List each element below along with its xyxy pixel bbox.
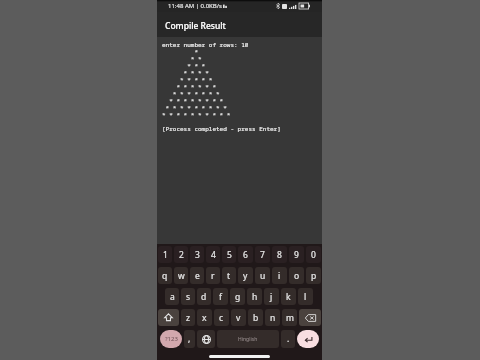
button[interactable]: n <box>265 309 280 326</box>
staticText: f <box>219 291 222 303</box>
button[interactable]: t <box>222 267 236 284</box>
staticText: 0 <box>311 249 316 261</box>
staticText: v <box>236 312 241 324</box>
staticText: u <box>260 270 266 282</box>
staticText: 9 <box>294 249 299 261</box>
button[interactable]: Change language <box>197 330 215 348</box>
button[interactable]: f <box>213 288 228 305</box>
button[interactable]: Compile Result <box>157 12 322 37</box>
button[interactable]: 6 <box>238 246 253 263</box>
staticText: j <box>270 291 273 303</box>
staticText: a <box>170 291 175 303</box>
button[interactable]: 1 <box>158 246 172 263</box>
button[interactable]: z <box>181 309 195 326</box>
button[interactable]: 8 <box>272 246 287 263</box>
button[interactable]: i <box>272 267 287 284</box>
staticText: . <box>287 333 290 345</box>
button[interactable]: 2 <box>174 246 188 263</box>
staticText: l <box>304 291 307 303</box>
button[interactable]: Backspace <box>299 309 321 326</box>
staticText: Hinglish <box>238 336 258 343</box>
button[interactable]: 3 <box>190 246 204 263</box>
button[interactable]: q <box>158 267 172 284</box>
button[interactable]: j <box>264 288 279 305</box>
button[interactable]: e <box>190 267 204 284</box>
staticText: y <box>243 270 248 282</box>
button[interactable]: w <box>174 267 188 284</box>
button[interactable]: k <box>281 288 296 305</box>
button[interactable]: Enter <box>297 330 319 348</box>
staticText: o <box>294 270 300 282</box>
staticText: t <box>227 270 231 282</box>
staticText: c <box>219 312 224 324</box>
button[interactable]: v <box>231 309 246 326</box>
staticText: , <box>188 333 191 345</box>
button[interactable]: d <box>197 288 211 305</box>
staticText: 8 <box>277 249 282 261</box>
button[interactable]: 7 <box>255 246 270 263</box>
staticText: k <box>286 291 291 303</box>
button[interactable]: 4 <box>206 246 220 263</box>
staticText: 2 <box>179 249 184 261</box>
button[interactable]: 9 <box>289 246 304 263</box>
button[interactable]: 5 <box>222 246 236 263</box>
staticText: 4 <box>211 249 216 261</box>
staticText: e <box>195 270 200 282</box>
button[interactable]: s <box>181 288 195 305</box>
button[interactable]: . <box>281 330 295 348</box>
staticText: 5 <box>227 249 232 261</box>
button[interactable]: r <box>206 267 220 284</box>
staticText: w <box>178 270 185 282</box>
button[interactable]: m <box>282 309 297 326</box>
button[interactable]: , <box>184 330 195 348</box>
staticText: 11:48 AM | 0.0KB/s <box>168 2 222 10</box>
button[interactable]: u <box>255 267 270 284</box>
staticText: q <box>162 270 168 282</box>
button[interactable]: x <box>197 309 212 326</box>
staticText: Compile Result <box>165 20 226 32</box>
staticText: g <box>235 291 241 303</box>
staticText: s <box>186 291 191 303</box>
button[interactable]: Hinglish <box>217 330 279 348</box>
staticText: x <box>202 312 207 324</box>
staticText: d <box>201 291 207 303</box>
button[interactable]: l <box>298 288 313 305</box>
staticText: ?123 <box>165 335 178 343</box>
button[interactable]: h <box>247 288 262 305</box>
staticText: 3 <box>195 249 200 261</box>
button[interactable]: Shift <box>158 309 179 326</box>
button[interactable]: a <box>165 288 179 305</box>
button[interactable]: ?123 <box>160 330 182 348</box>
staticText: m <box>286 312 294 324</box>
staticText: i <box>278 270 281 282</box>
button[interactable]: g <box>230 288 245 305</box>
staticText: r <box>211 270 215 282</box>
staticText: 7 <box>260 249 265 261</box>
staticText: p <box>311 270 317 282</box>
staticText: enter number of rows: 10 * * * * * * * *… <box>162 41 281 133</box>
button[interactable]: p <box>306 267 321 284</box>
staticText: b <box>253 312 259 324</box>
button[interactable]: y <box>238 267 253 284</box>
button[interactable]: o <box>289 267 304 284</box>
staticText: h <box>252 291 258 303</box>
staticText: z <box>186 312 190 324</box>
button[interactable]: b <box>248 309 263 326</box>
staticText: 1 <box>163 249 168 261</box>
staticText: n <box>270 312 276 324</box>
staticText: 6 <box>243 249 248 261</box>
button[interactable]: 0 <box>306 246 321 263</box>
button[interactable]: c <box>214 309 229 326</box>
